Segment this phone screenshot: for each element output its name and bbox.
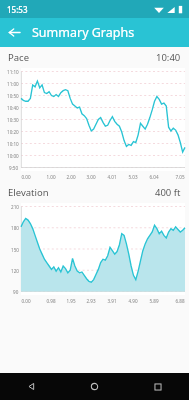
staticText: 9:50 [9, 165, 19, 171]
staticText: 0.98 [46, 298, 56, 304]
staticText: 10:00 [7, 153, 19, 159]
staticText: 10:10 [7, 141, 19, 147]
staticText: 10:30 [7, 117, 19, 123]
staticText: 90 [13, 289, 19, 295]
staticText: 10:40 [156, 51, 181, 64]
staticText: 6.04 [149, 174, 159, 180]
staticText: 400 ft [155, 186, 181, 199]
staticText: Elevation [8, 186, 49, 199]
staticText: 11:00 [7, 81, 19, 87]
staticText: 5.89 [149, 298, 159, 304]
staticText: 7.05 [175, 174, 185, 180]
staticText: 15:53 [7, 4, 28, 15]
staticText: 0.00 [21, 174, 31, 180]
staticText: 1.00 [46, 174, 56, 180]
staticText: 10:50 [7, 93, 19, 99]
staticText: 10:40 [7, 105, 19, 111]
staticText: 1.95 [66, 298, 76, 304]
button[interactable]: Home [63, 373, 126, 400]
staticText: 2.00 [66, 174, 76, 180]
staticText: 6.88 [175, 298, 185, 304]
staticText: 10:20 [7, 129, 19, 135]
staticText: 11:10 [7, 69, 19, 75]
staticText: 2.93 [86, 298, 96, 304]
staticText: 210 [11, 204, 19, 210]
staticText: 3.91 [107, 298, 117, 304]
button[interactable]: Back [0, 373, 63, 400]
button[interactable]: Back [0, 18, 29, 47]
staticText: Summary Graphs [32, 24, 135, 41]
staticText: 0.00 [21, 298, 31, 304]
staticText: 150 [11, 247, 19, 253]
staticText: 4.01 [107, 174, 117, 180]
staticText: 4.90 [128, 298, 138, 304]
staticText: 180 [11, 225, 19, 231]
staticText: Pace [8, 51, 29, 64]
button[interactable]: Recent apps [126, 373, 189, 400]
staticText: 3.00 [86, 174, 96, 180]
staticText: 120 [11, 268, 19, 274]
staticText: 5.03 [128, 174, 138, 180]
